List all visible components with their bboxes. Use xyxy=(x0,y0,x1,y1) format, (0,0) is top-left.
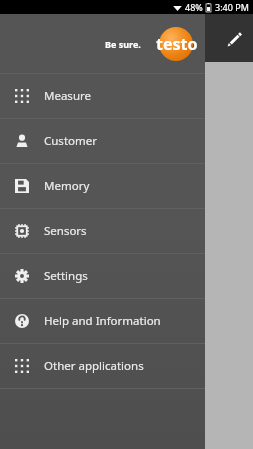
button[interactable]: Sensors xyxy=(0,209,205,253)
button[interactable]: Memory xyxy=(0,164,205,208)
button[interactable]: Other applications xyxy=(0,344,205,388)
staticText: 3:40 PM xyxy=(215,1,249,13)
button[interactable]: Settings xyxy=(0,254,205,298)
staticText: testo xyxy=(156,33,198,55)
staticText: Customer xyxy=(44,133,97,149)
button[interactable]: Edit xyxy=(221,26,247,52)
button[interactable]: Customer xyxy=(0,119,205,163)
staticText: 48% xyxy=(185,1,203,13)
staticText: Other applications xyxy=(44,358,144,374)
button[interactable]: Help and Information xyxy=(0,299,205,343)
button[interactable]: Measure xyxy=(0,74,205,118)
staticText: Be sure. xyxy=(105,38,141,50)
staticText: Measure xyxy=(44,88,91,104)
staticText: Help and Information xyxy=(44,313,161,329)
staticText: Memory xyxy=(44,178,90,194)
staticText: Sensors xyxy=(44,223,87,239)
staticText: Settings xyxy=(44,268,88,284)
